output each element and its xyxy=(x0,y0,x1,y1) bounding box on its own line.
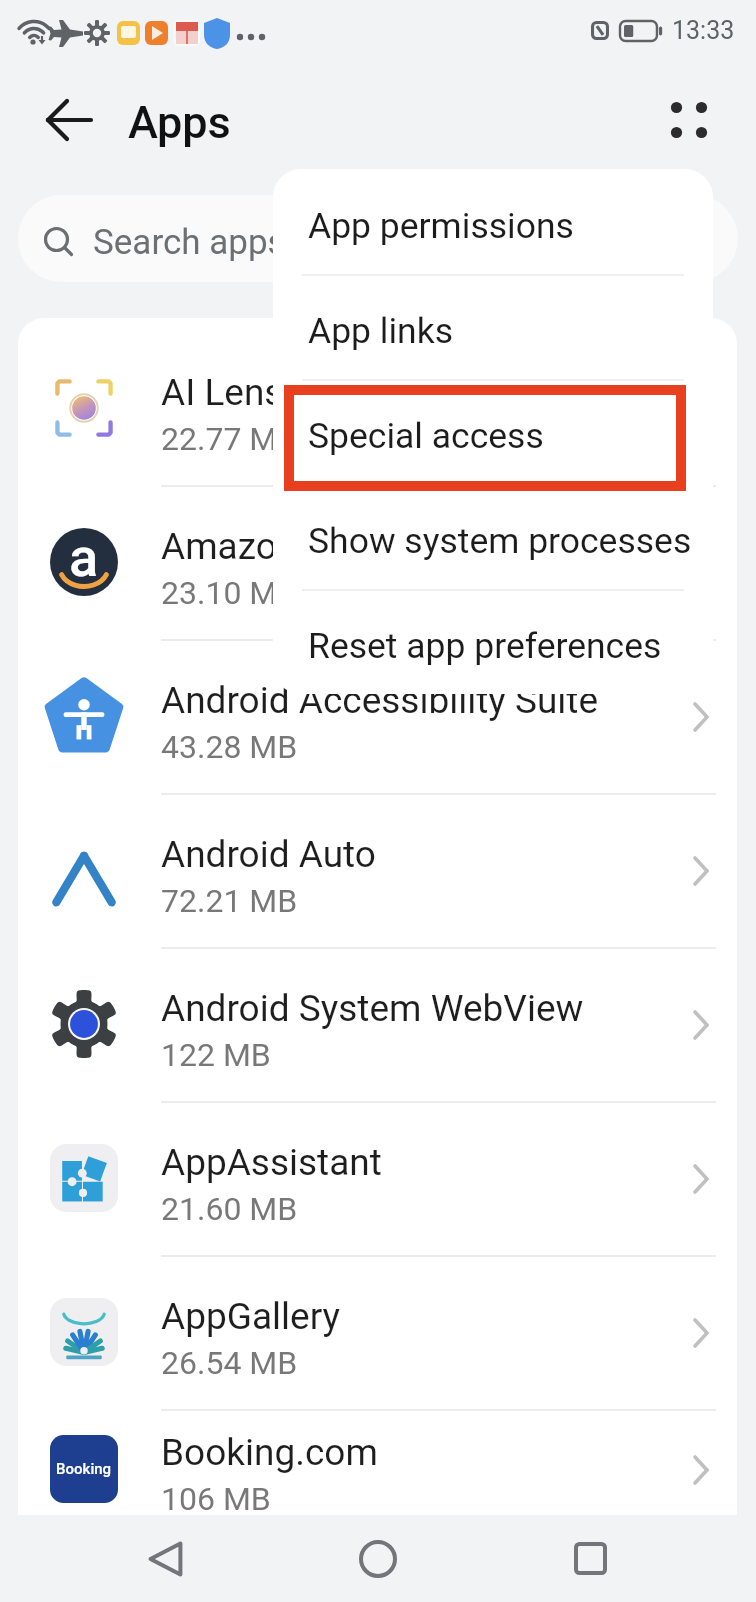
staticText: App permissions xyxy=(308,205,574,247)
button[interactable]: Back xyxy=(33,84,105,156)
button[interactable]: Back xyxy=(120,1515,212,1602)
staticText: a xyxy=(69,526,99,589)
staticText: Apps xyxy=(128,96,231,149)
staticText: Android Accessibility Suite xyxy=(161,679,599,722)
staticText: Booking.com xyxy=(161,1431,378,1474)
staticText: Reset app preferences xyxy=(308,625,662,667)
button[interactable]: Show system processes xyxy=(273,484,713,589)
staticText: 72.21 MB xyxy=(161,882,298,920)
staticText: 43.28 MB xyxy=(161,728,298,766)
staticText: AI Lens xyxy=(161,371,284,414)
staticText: 106 MB xyxy=(161,1480,271,1518)
button[interactable]: App permissions xyxy=(273,169,713,274)
button[interactable]: Special access xyxy=(273,379,713,484)
staticText: 13:33 xyxy=(672,16,735,45)
button[interactable]: AI Lens xyxy=(18,331,737,485)
button[interactable]: Reset app preferences xyxy=(273,589,713,694)
staticText: App links xyxy=(308,310,454,352)
button[interactable]: AppAssistant xyxy=(18,1101,737,1255)
button[interactable]: App links xyxy=(273,274,713,379)
staticText: 23.10 MB xyxy=(161,574,298,612)
button[interactable]: a xyxy=(18,485,737,639)
button[interactable]: Android Auto xyxy=(18,793,737,947)
staticText: Show system processes xyxy=(308,520,692,562)
button[interactable]: More options xyxy=(653,84,725,156)
staticText: Search apps xyxy=(93,222,286,263)
button[interactable]: Android Accessibility Suite xyxy=(18,639,737,793)
staticText: AppGallery xyxy=(161,1295,341,1338)
staticText: 22.77 MB xyxy=(161,420,298,458)
staticText: 122 MB xyxy=(161,1036,271,1074)
button[interactable]: Search apps xyxy=(18,195,738,282)
button[interactable]: AppGallery xyxy=(18,1255,737,1409)
button[interactable]: Booking xyxy=(18,1409,737,1528)
staticText: Android Auto xyxy=(161,833,376,876)
staticText: Android System WebView xyxy=(161,987,584,1030)
staticText: Special access xyxy=(308,415,544,457)
button[interactable]: Recents xyxy=(544,1515,636,1602)
staticText: 26.54 MB xyxy=(161,1344,298,1382)
button[interactable]: Android System WebView xyxy=(18,947,737,1101)
staticText: AppAssistant xyxy=(161,1141,382,1184)
button[interactable]: Home xyxy=(332,1515,424,1602)
staticText: Amazon xyxy=(161,525,298,568)
staticText: Booking xyxy=(56,1460,112,1478)
staticText: 21.60 MB xyxy=(161,1190,298,1228)
